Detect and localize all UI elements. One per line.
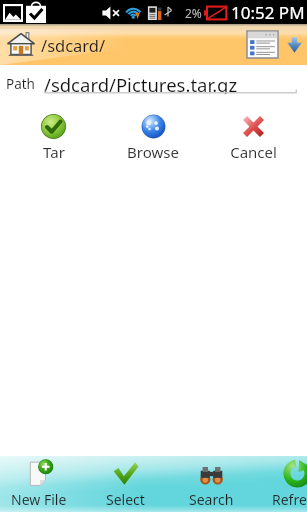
staticText: /sdcard/Pictures.tar.gz (44, 72, 238, 94)
button[interactable]: Browse (103, 114, 203, 162)
staticText: Path (6, 75, 35, 93)
button[interactable]: /sdcard/Pictures.tar.gz (44, 72, 297, 94)
button[interactable]: Search (168, 456, 254, 512)
button[interactable]: File list (247, 31, 278, 58)
button[interactable]: Tar (4, 114, 103, 162)
button[interactable]: Refresh (254, 456, 307, 512)
staticText: Tar (43, 142, 65, 162)
staticText: 2% (185, 5, 202, 21)
staticText: Search (189, 490, 234, 509)
staticText: New File (11, 490, 67, 509)
staticText: Cancel (230, 142, 277, 162)
button[interactable]: Home (7, 31, 35, 58)
staticText: Select (106, 490, 145, 509)
staticText: Refresh (272, 490, 307, 509)
staticText: Browse (127, 142, 179, 162)
button[interactable]: Download (287, 37, 302, 53)
staticText: /sdcard/ (41, 34, 106, 56)
staticText: 10:52 PM (231, 1, 305, 24)
button[interactable]: Select (82, 456, 168, 512)
button[interactable]: Cancel (203, 114, 303, 162)
button[interactable]: New File (0, 456, 82, 512)
